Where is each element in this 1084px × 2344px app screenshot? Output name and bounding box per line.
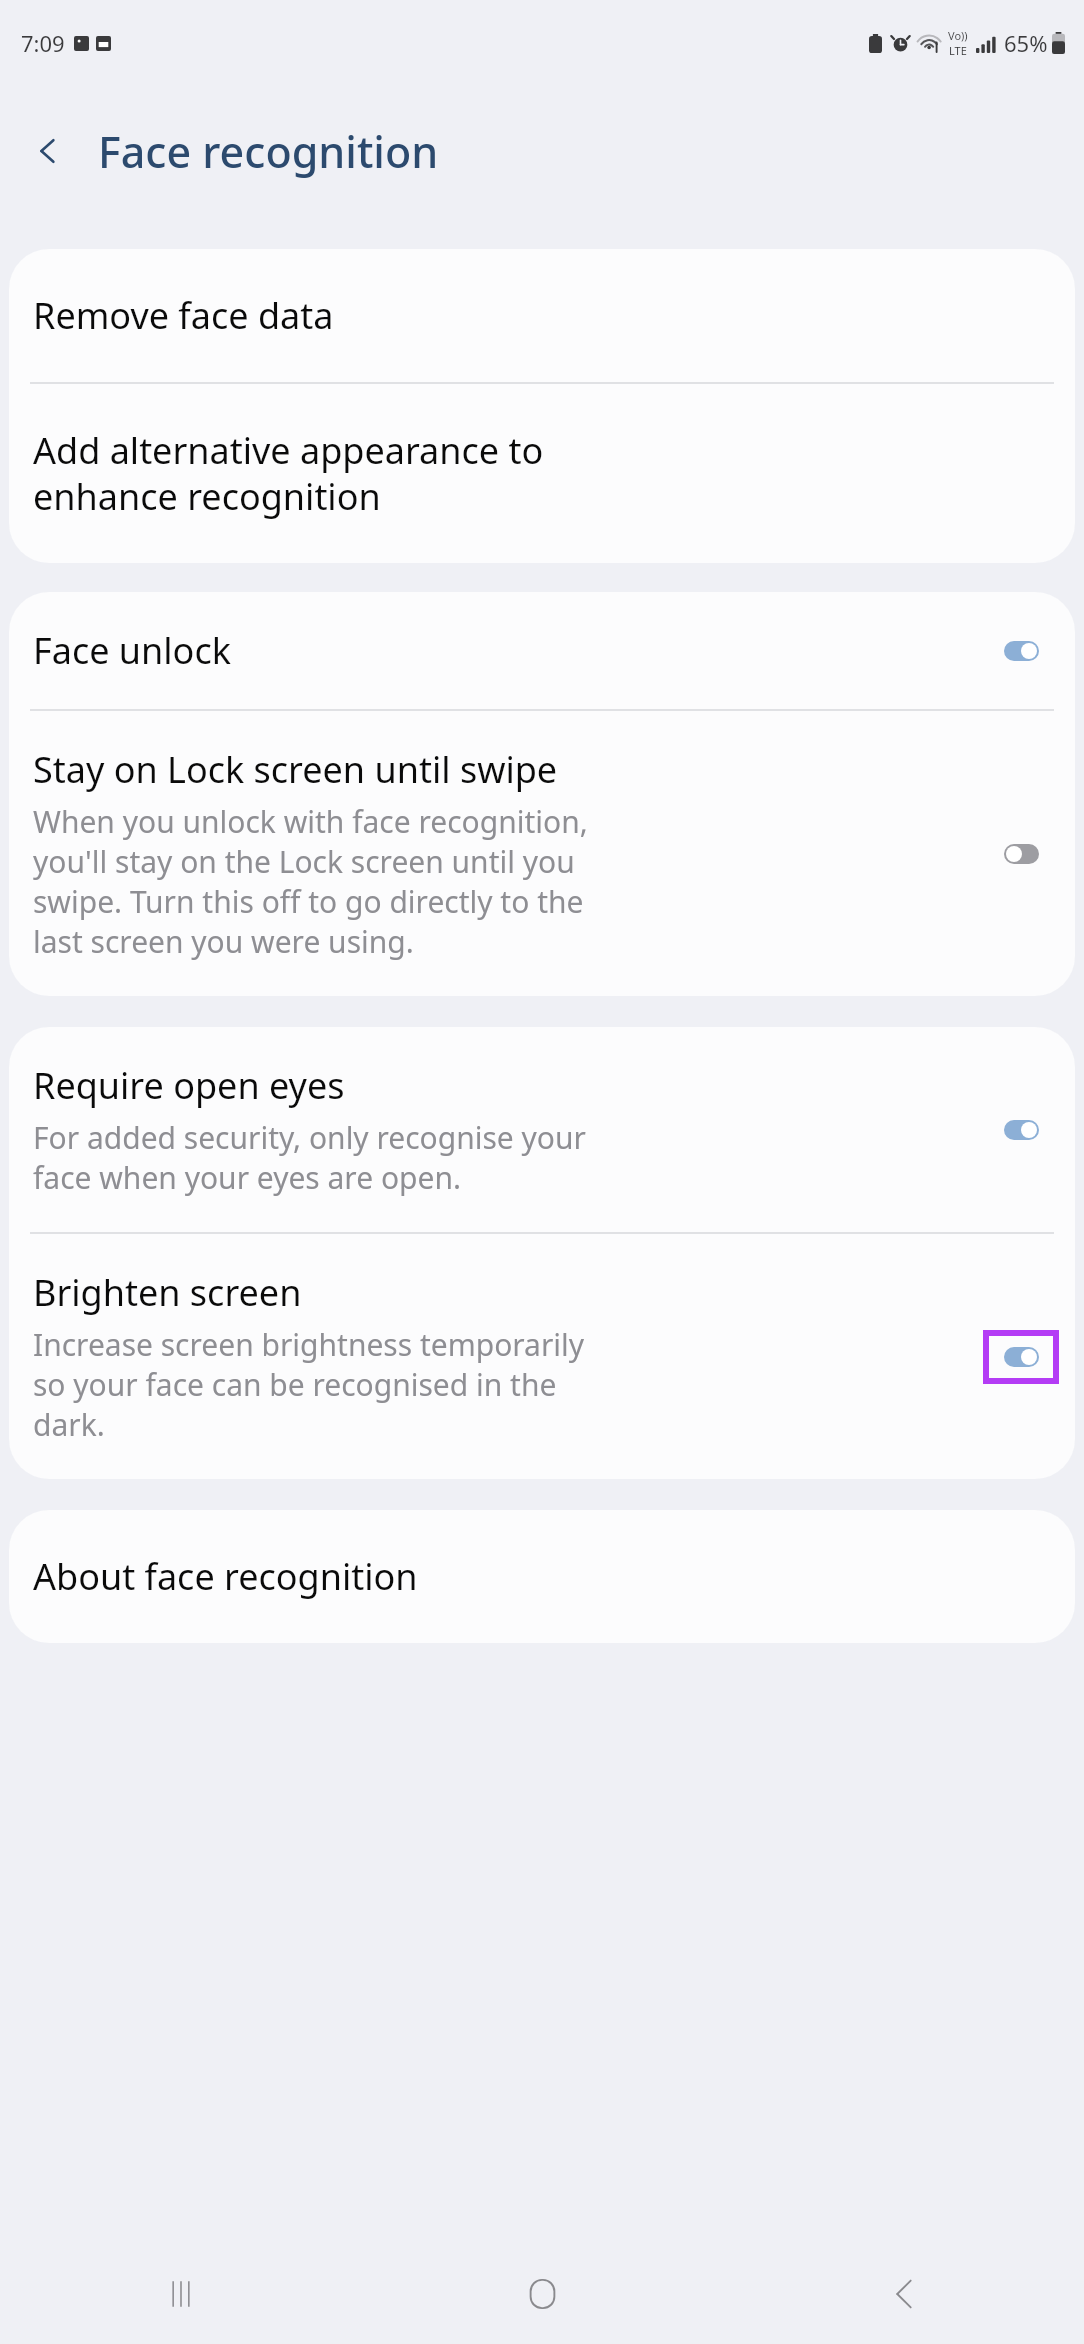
staticText: 7:09 bbox=[21, 28, 65, 58]
staticText: Vo)) bbox=[948, 28, 968, 43]
button[interactable]: Toggle on bbox=[1004, 641, 1039, 661]
staticText: About face recognition bbox=[33, 1552, 418, 1601]
staticText: For added security, only recognise your … bbox=[33, 1117, 586, 1198]
staticText: When you unlock with face recognition, y… bbox=[33, 801, 588, 962]
button[interactable]: Remove face data bbox=[9, 249, 1075, 382]
staticText: Increase screen brightness temporarily s… bbox=[33, 1324, 585, 1445]
button[interactable]: Add alternative appearance to enhance re… bbox=[9, 384, 1075, 563]
button[interactable]: Require open eyes bbox=[9, 1027, 1075, 1232]
button[interactable]: Toggle on bbox=[1004, 1120, 1039, 1140]
button[interactable]: Back bbox=[723, 2244, 1084, 2344]
button[interactable]: Stay on Lock screen until swipe bbox=[9, 711, 1075, 996]
staticText: Stay on Lock screen until swipe bbox=[33, 745, 558, 794]
button[interactable]: Toggle on bbox=[1004, 1347, 1039, 1367]
button[interactable]: Face unlock bbox=[9, 592, 1075, 709]
button[interactable]: Home bbox=[362, 2244, 723, 2344]
button[interactable]: Toggle off bbox=[1004, 844, 1039, 864]
staticText: 65% bbox=[1004, 28, 1048, 58]
button[interactable]: Back bbox=[21, 124, 75, 178]
button[interactable]: Recent apps bbox=[0, 2244, 362, 2344]
staticText: Remove face data bbox=[33, 291, 334, 340]
staticText: Face recognition bbox=[98, 122, 439, 181]
staticText: Require open eyes bbox=[33, 1061, 345, 1110]
staticText: Face unlock bbox=[33, 626, 231, 675]
staticText: Brighten screen bbox=[33, 1268, 302, 1317]
staticText: Add alternative appearance to enhance re… bbox=[33, 426, 544, 521]
staticText: LTE bbox=[949, 43, 967, 58]
button[interactable]: About face recognition bbox=[9, 1510, 1075, 1643]
button[interactable]: Brighten screen bbox=[9, 1234, 1075, 1479]
